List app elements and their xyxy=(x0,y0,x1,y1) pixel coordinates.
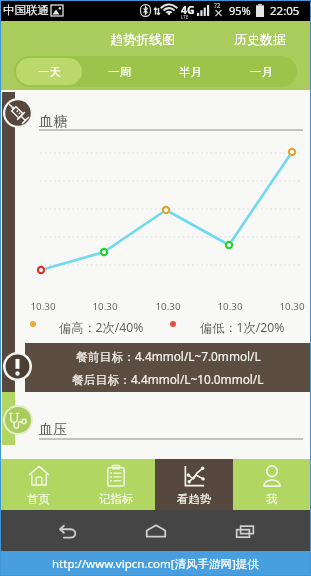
staticText: 10.30 xyxy=(92,300,118,313)
staticText: 95% xyxy=(229,3,251,18)
button[interactable]: Blood pressure xyxy=(3,405,33,435)
staticText: 首页 xyxy=(27,492,50,506)
button[interactable]: 血糖 xyxy=(39,112,68,130)
staticText: 一天 xyxy=(38,65,61,79)
staticText: 一周 xyxy=(108,65,131,79)
button[interactable]: Home xyxy=(142,517,170,545)
button[interactable]: 记指标 xyxy=(77,459,155,510)
staticText: 我 xyxy=(266,492,278,506)
staticText: 22:05 xyxy=(270,3,300,19)
staticText: 偏低：1次/20% xyxy=(200,319,285,336)
staticText: http://www.vipcn.com[清风手游网]提供 xyxy=(52,556,259,572)
button[interactable]: 一天 xyxy=(16,58,82,85)
button[interactable]: Blood sugar xyxy=(3,98,33,128)
staticText: 10.30 xyxy=(279,300,305,313)
button[interactable]: 一周 xyxy=(86,58,153,85)
staticText: 10.30 xyxy=(155,300,181,313)
button[interactable]: Recents xyxy=(231,517,259,545)
staticText: 趋势折线图 xyxy=(110,31,175,47)
staticText: 血压 xyxy=(39,420,68,438)
staticText: 4G xyxy=(181,3,195,17)
button[interactable]: 半月 xyxy=(157,58,224,85)
staticText: 历史数据 xyxy=(234,31,286,47)
button[interactable]: 趋势折线图 xyxy=(104,26,181,52)
button[interactable]: 血压 xyxy=(39,420,68,438)
staticText: 偏高：2次/40% xyxy=(59,319,144,336)
staticText: 10.30 xyxy=(30,300,56,313)
staticText: 一月 xyxy=(250,65,273,79)
button[interactable]: 一月 xyxy=(228,58,295,85)
staticText: LTE xyxy=(181,14,189,20)
staticText: 餐前目标：4.4mmol/L~7.0mmol/L xyxy=(76,348,261,364)
staticText: 记指标 xyxy=(99,492,134,506)
staticText: 半月 xyxy=(179,65,202,79)
button[interactable]: 看趋势 xyxy=(155,459,233,510)
staticText: 血糖 xyxy=(39,112,68,130)
button[interactable]: 首页 xyxy=(0,459,77,510)
button[interactable]: 我 xyxy=(233,459,311,510)
button[interactable]: 历史数据 xyxy=(228,26,292,52)
staticText: ?2 xyxy=(214,1,221,10)
staticText: 看趋势 xyxy=(177,492,212,506)
staticText: 餐后目标：4.4mmol/L~10.0mmol/L xyxy=(72,371,264,387)
staticText: 10.30 xyxy=(217,300,243,313)
staticText: 中国联通 xyxy=(3,3,49,17)
button[interactable]: Info xyxy=(3,352,32,381)
button[interactable]: Back xyxy=(53,517,81,545)
